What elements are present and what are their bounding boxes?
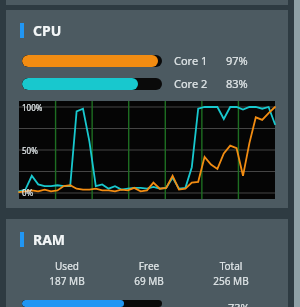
staticText: 97% [226, 53, 248, 68]
staticText: 256 MB [190, 274, 272, 288]
staticText: 69 MB [108, 274, 190, 288]
staticText: 187 MB [26, 274, 108, 288]
button[interactable]: RAM [6, 219, 288, 307]
staticText: Core 2 [174, 76, 226, 91]
staticText: RAM [33, 230, 66, 249]
staticText: Core 1 [174, 53, 226, 68]
staticText: 50% [22, 145, 38, 156]
staticText: CPU [33, 21, 62, 40]
staticText: Used [26, 259, 108, 273]
staticText: 100% [22, 102, 43, 113]
staticText: 73% [228, 300, 250, 307]
staticText: 0% [22, 187, 34, 198]
staticText: Total [190, 259, 272, 273]
staticText: Free [108, 259, 190, 273]
button[interactable]: CPU [6, 10, 288, 208]
staticText: 83% [226, 76, 248, 91]
